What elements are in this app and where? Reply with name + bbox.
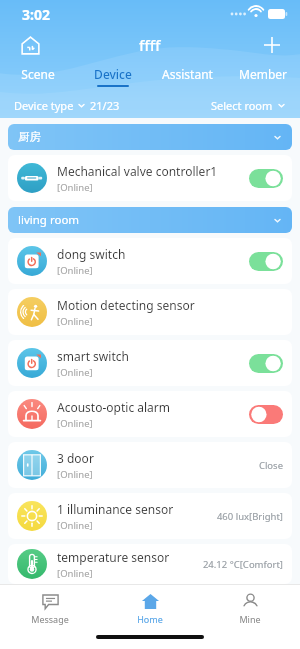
staticText: dong switch — [57, 246, 126, 262]
staticText: temperature sensor — [57, 549, 170, 565]
button[interactable]: Add device — [256, 29, 288, 61]
staticText: Mine — [239, 613, 261, 625]
button[interactable]: living room — [8, 207, 292, 233]
staticText: [Online] — [57, 567, 93, 580]
button[interactable]: Motion detecting sensor — [8, 289, 292, 335]
staticText: 460 lux[Bright] — [216, 510, 283, 523]
button[interactable]: Scene — [0, 62, 75, 92]
button[interactable]: Turn on — [249, 405, 283, 424]
staticText: 3:02 — [22, 5, 50, 24]
staticText: [Online] — [57, 468, 93, 481]
staticText: [Online] — [57, 519, 93, 532]
staticText: Message — [31, 613, 69, 625]
staticText: [Online] — [57, 366, 93, 379]
button[interactable]: Turn off — [249, 169, 283, 188]
button[interactable]: Device — [75, 62, 150, 92]
staticText: 21/23 — [90, 98, 120, 113]
button[interactable]: Turn off — [249, 252, 283, 271]
button[interactable]: 厨房 — [8, 124, 292, 150]
staticText: 厨房 — [18, 130, 41, 144]
button[interactable]: Acousto-optic alarm — [8, 391, 292, 437]
button[interactable]: temperature sensor — [8, 544, 292, 584]
staticText: [Online] — [57, 315, 93, 328]
staticText: living room — [18, 212, 80, 228]
button[interactable]: Message — [0, 585, 100, 631]
staticText: smart switch — [57, 348, 129, 364]
staticText: [Online] — [57, 417, 93, 430]
staticText: [Online] — [57, 264, 93, 277]
button[interactable]: Mechanical valve controller1 — [8, 155, 292, 201]
staticText: Acousto-optic alarm — [57, 399, 170, 415]
button[interactable]: Home — [100, 585, 200, 631]
button[interactable]: 3 door — [8, 442, 292, 488]
button[interactable]: 1 illuminance sensor — [8, 493, 292, 539]
button[interactable]: Assistant — [150, 62, 225, 92]
staticText: Assistant — [162, 66, 213, 82]
staticText: [Online] — [57, 181, 93, 194]
button[interactable]: Select room — [211, 98, 286, 113]
staticText: Device type — [14, 98, 74, 113]
staticText: 24.12 °C[Comfort] — [202, 558, 283, 571]
staticText: Motion detecting sensor — [57, 297, 195, 313]
staticText: 1 illuminance sensor — [57, 501, 174, 517]
staticText: Close — [258, 459, 283, 472]
staticText: 3 door — [57, 450, 94, 466]
staticText: ffff — [139, 35, 161, 55]
button[interactable]: dong switch — [8, 238, 292, 284]
button[interactable]: Mine — [200, 585, 300, 631]
button[interactable]: smart switch — [8, 340, 292, 386]
button[interactable]: Home — [14, 29, 46, 61]
staticText: Scene — [21, 66, 55, 82]
staticText: Device — [94, 66, 132, 82]
button[interactable]: Member — [225, 62, 300, 92]
staticText: Home — [137, 613, 163, 625]
button[interactable]: Device type — [14, 98, 120, 113]
staticText: Mechanical valve controller1 — [57, 163, 218, 179]
staticText: Member — [239, 66, 287, 82]
button[interactable]: Turn off — [249, 354, 283, 373]
staticText: Select room — [211, 98, 273, 113]
